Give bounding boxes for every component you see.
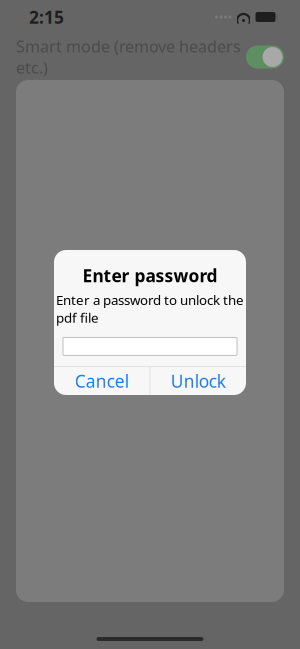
staticText: 2:15 (29, 5, 64, 28)
staticText: Enter password (82, 264, 217, 287)
staticText: Enter a password to unlock the pdf file (56, 291, 244, 326)
staticText: Smart mode (remove headers etc.) (16, 36, 241, 78)
button[interactable]: Smart mode toggle (246, 45, 284, 68)
button[interactable]: Cancel (54, 367, 150, 395)
staticText: Cancel (75, 369, 129, 392)
staticText: Unlock (171, 369, 226, 392)
button[interactable]: Unlock (150, 367, 246, 395)
